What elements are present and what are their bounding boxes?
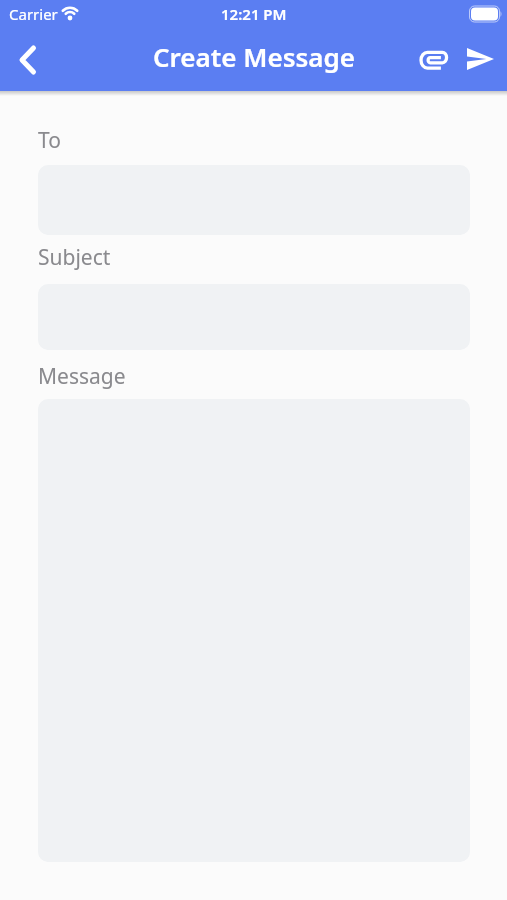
staticText: 12:21 PM xyxy=(221,4,287,24)
staticText: Message xyxy=(38,362,126,391)
staticText: Create Message xyxy=(153,39,355,74)
button[interactable] xyxy=(458,37,502,81)
staticText: Subject xyxy=(38,243,111,272)
button[interactable] xyxy=(411,37,455,81)
staticText: To xyxy=(38,126,61,155)
button[interactable] xyxy=(5,38,49,82)
staticText: Carrier xyxy=(9,4,58,24)
